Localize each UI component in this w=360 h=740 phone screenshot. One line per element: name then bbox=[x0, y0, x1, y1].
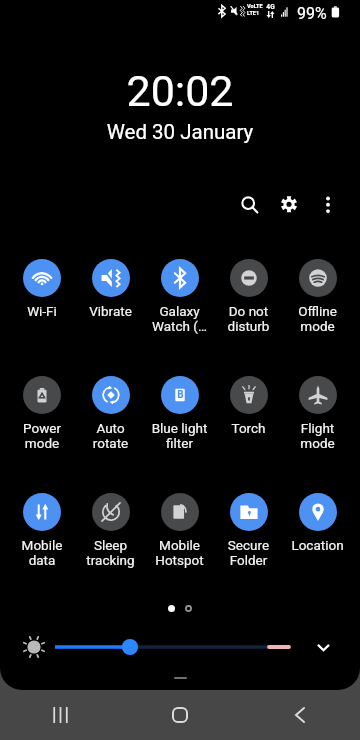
button[interactable]: Location bbox=[283, 493, 352, 553]
button[interactable]: Search bbox=[226, 178, 270, 222]
button[interactable]: Settings bbox=[267, 178, 311, 222]
button[interactable]: Offline mode bbox=[283, 259, 352, 334]
button[interactable]: Auto rotate bbox=[76, 376, 145, 451]
staticText: 99% bbox=[297, 4, 327, 23]
staticText: Secure Folder bbox=[214, 537, 283, 568]
button[interactable]: Wi-Fi bbox=[8, 259, 76, 319]
staticText: LTE1 bbox=[247, 10, 260, 17]
button[interactable]: Mobile data bbox=[8, 493, 76, 568]
button[interactable]: Secure Folder bbox=[214, 493, 283, 568]
staticText: Offline mode bbox=[283, 303, 352, 334]
staticText: Flight mode bbox=[283, 420, 352, 451]
button[interactable]: Power mode bbox=[8, 376, 76, 451]
staticText: VoLTE bbox=[247, 3, 263, 10]
button[interactable]: Home bbox=[120, 690, 240, 740]
staticText: Auto rotate bbox=[76, 420, 145, 451]
button[interactable]: Flight mode bbox=[283, 376, 352, 451]
button[interactable]: Galaxy Watch (… bbox=[145, 259, 214, 334]
button[interactable]: Sleep tracking bbox=[76, 493, 145, 568]
staticText: Location bbox=[283, 537, 352, 553]
button[interactable]: Torch bbox=[214, 376, 283, 436]
staticText: Vibrate bbox=[76, 303, 145, 319]
button[interactable]: Back bbox=[240, 690, 360, 740]
button[interactable]: Recent apps bbox=[0, 690, 120, 740]
staticText: Do not disturb bbox=[214, 303, 283, 334]
staticText: B bbox=[177, 389, 184, 401]
staticText: Wed 30 January bbox=[0, 120, 360, 144]
button[interactable]: Vibrate bbox=[76, 259, 145, 319]
button[interactable]: More options bbox=[306, 178, 350, 222]
staticText: 20:02 bbox=[0, 66, 360, 116]
staticText: Power mode bbox=[8, 420, 76, 451]
staticText: Wi-Fi bbox=[8, 303, 76, 319]
button[interactable]: Mobile Hotspot bbox=[145, 493, 214, 568]
button[interactable]: B bbox=[145, 376, 214, 451]
staticText: 4G bbox=[266, 3, 275, 11]
staticText: Mobile Hotspot bbox=[145, 537, 214, 568]
staticText: Sleep tracking bbox=[76, 537, 145, 568]
staticText: Torch bbox=[214, 420, 283, 436]
staticText: Galaxy Watch (… bbox=[145, 303, 214, 334]
staticText: Blue light filter bbox=[145, 420, 214, 451]
button[interactable]: Do not disturb bbox=[214, 259, 283, 334]
staticText: Mobile data bbox=[8, 537, 76, 568]
